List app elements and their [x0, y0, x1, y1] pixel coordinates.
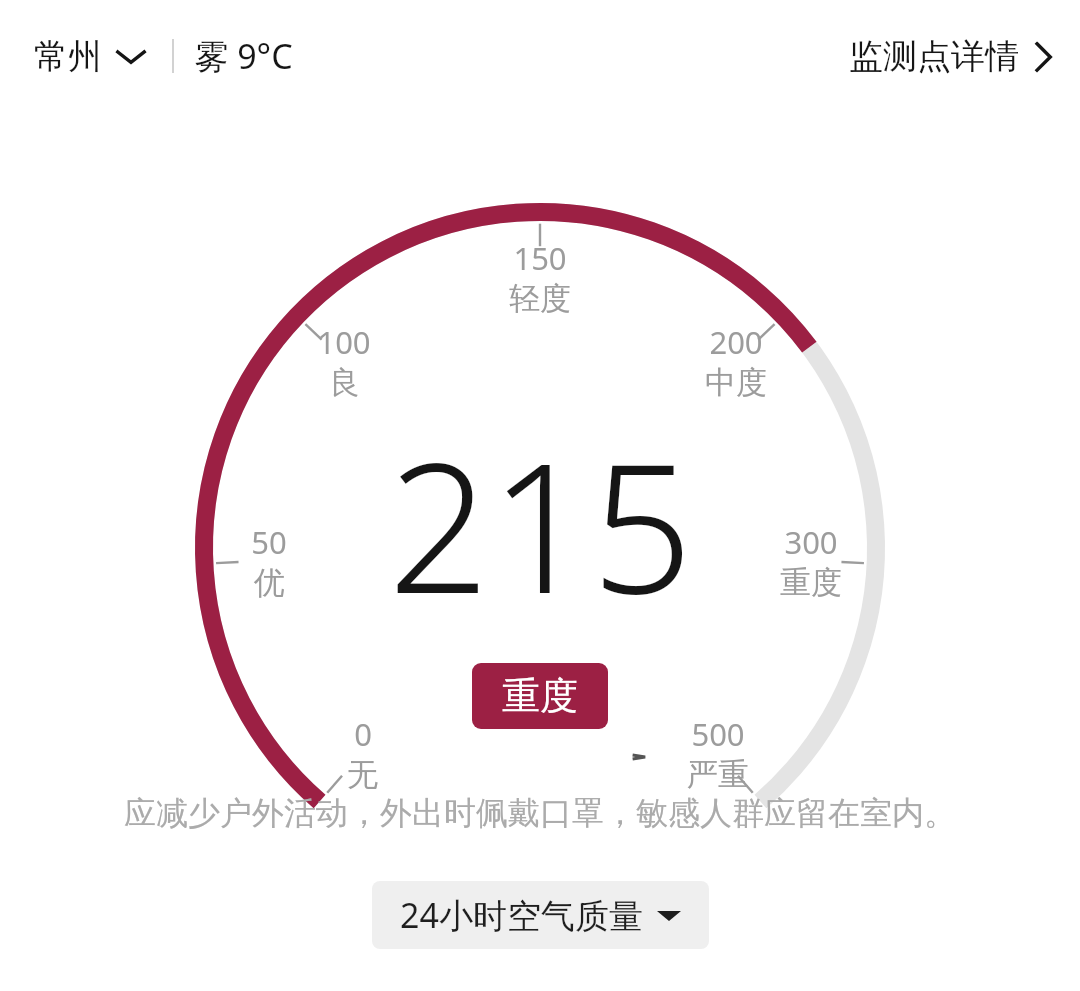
staticText: 监测点详情: [849, 35, 1019, 78]
staticText: 150: [513, 237, 567, 279]
staticText: 良: [329, 363, 360, 402]
staticText: 重度: [502, 672, 578, 720]
staticText: 24小时空气质量: [400, 892, 643, 938]
staticText: 500: [691, 713, 745, 755]
staticText: 优: [254, 563, 285, 602]
button[interactable]: 重度: [472, 663, 608, 729]
button[interactable]: 监测点详情: [837, 27, 1080, 86]
staticText: 无: [347, 755, 378, 794]
staticText: 200: [709, 321, 763, 363]
staticText: 300: [784, 521, 838, 563]
button[interactable]: 全国第339名: [423, 751, 657, 763]
button[interactable]: 24小时空气质量: [372, 881, 709, 949]
staticText: 100: [317, 321, 371, 363]
other: 监测点详情: [1035, 42, 1052, 72]
staticText: 轻度: [509, 279, 571, 318]
staticText: 严重: [687, 755, 749, 794]
button[interactable]: 常州: [22, 27, 158, 86]
staticText: 中度: [705, 363, 767, 402]
staticText: 应减少户外活动，外出时佩戴口罩，敏感人群应留在室内。: [124, 793, 956, 833]
staticText: 常州: [34, 35, 102, 78]
staticText: 0: [354, 713, 372, 755]
staticText: 雾 9°C: [194, 33, 293, 79]
staticText: 重度: [780, 563, 842, 602]
staticText: 50: [251, 521, 287, 563]
staticText: 215: [388, 403, 693, 645]
